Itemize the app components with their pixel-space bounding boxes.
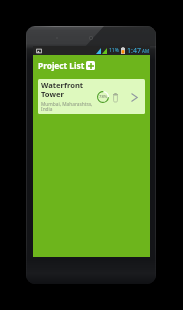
- staticText: 78%: [99, 94, 108, 100]
- button[interactable]: Waterfront Tower: [38, 79, 145, 114]
- staticText: Project List: [38, 60, 85, 71]
- button[interactable]: Add project: [86, 61, 95, 70]
- staticText: 11%: [109, 47, 119, 54]
- button[interactable]: Delete: [110, 92, 120, 102]
- staticText: Waterfront Tower: [41, 80, 84, 99]
- button[interactable]: Open project: [129, 92, 139, 102]
- staticText: AM: [142, 48, 149, 54]
- staticText: 1:47: [127, 46, 141, 55]
- staticText: Mumbai, Maharashtra, India: [41, 101, 93, 113]
